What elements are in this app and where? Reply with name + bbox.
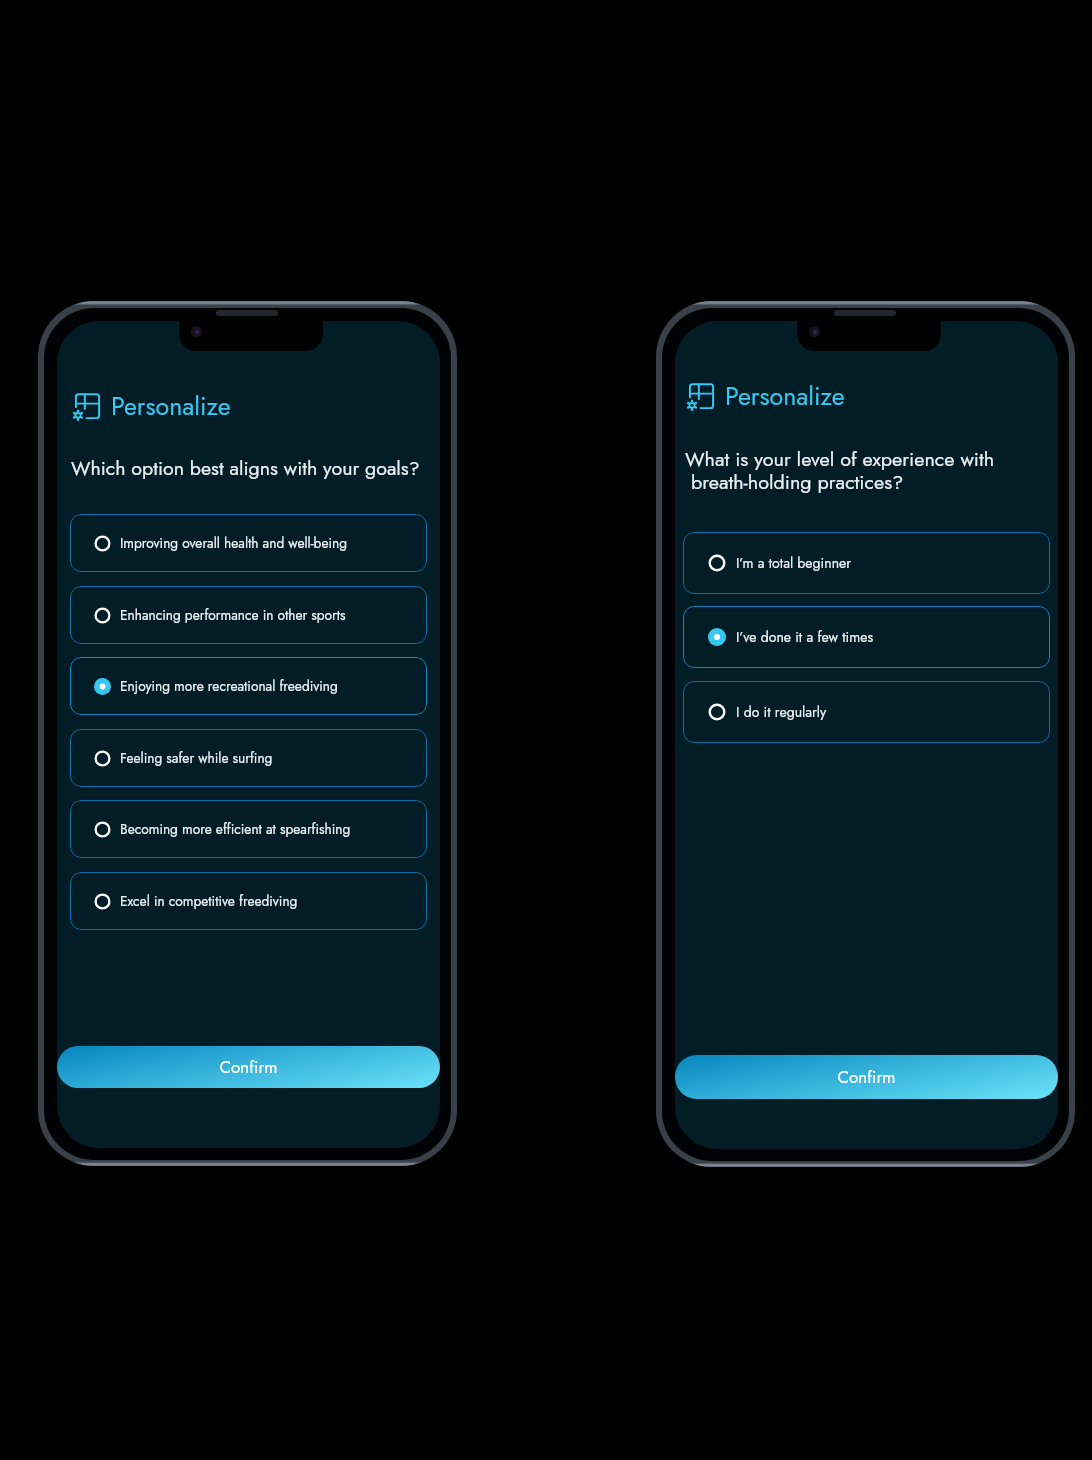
button[interactable]: Confirm xyxy=(57,1046,440,1088)
staticText: Excel in competitive freediving xyxy=(120,891,298,911)
staticText: Enhancing performance in other sports xyxy=(120,605,346,625)
button[interactable]: Confirm xyxy=(675,1055,1058,1099)
staticText: I’m a total beginner xyxy=(736,553,852,573)
button[interactable]: Personalize xyxy=(675,382,1058,416)
staticText: Personalize xyxy=(111,388,231,422)
button[interactable]: Becoming more efficient at spearfishing xyxy=(70,800,427,858)
staticText: Feeling safer while surfing xyxy=(120,748,273,768)
button[interactable]: Improving overall health and well-being xyxy=(70,514,427,572)
other: Personalize xyxy=(686,382,716,412)
staticText: Becoming more efficient at spearfishing xyxy=(120,819,351,839)
staticText: I’ve done it a few times xyxy=(736,627,874,647)
staticText: Enjoying more recreational freediving xyxy=(120,676,338,696)
button[interactable]: I do it regularly xyxy=(683,681,1050,743)
button[interactable]: Excel in competitive freediving xyxy=(70,872,427,930)
staticText: What is your level of experience with br… xyxy=(685,445,1058,497)
staticText: Which option best aligns with your goals… xyxy=(71,454,440,482)
other: Personalize xyxy=(72,392,102,422)
button[interactable]: I’ve done it a few times xyxy=(683,606,1050,668)
staticText: Confirm xyxy=(219,1055,278,1080)
button[interactable]: I’m a total beginner xyxy=(683,532,1050,594)
button[interactable]: Personalize xyxy=(57,392,440,426)
button[interactable]: Feeling safer while surfing xyxy=(70,729,427,787)
button[interactable]: Enhancing performance in other sports xyxy=(70,586,427,644)
staticText: I do it regularly xyxy=(736,702,827,722)
staticText: Personalize xyxy=(725,378,845,412)
button[interactable]: Enjoying more recreational freediving xyxy=(70,657,427,715)
staticText: Confirm xyxy=(837,1065,896,1090)
staticText: Improving overall health and well-being xyxy=(120,533,348,553)
